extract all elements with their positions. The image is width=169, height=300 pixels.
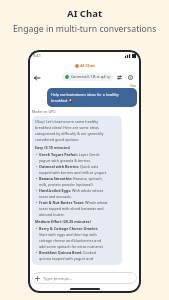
- button[interactable]: Benchmark: [115, 73, 124, 82]
- staticText: 9:41: [33, 53, 41, 58]
- staticText: Model on GPU: [32, 109, 56, 114]
- staticText: •: [36, 226, 38, 231]
- staticText: Engage in multi-turn conversations: [13, 23, 157, 35]
- button[interactable]: Type prompt...: [32, 272, 137, 284]
- staticText: Easy (5-10 minutes): [35, 145, 71, 150]
- staticText: •: [36, 188, 38, 193]
- staticText: AI Chat: [67, 7, 103, 20]
- staticText: AI Chat: [80, 63, 95, 69]
- staticText: Help me brainstorm ideas for a healthy b…: [51, 92, 119, 103]
- staticText: Greek Yogurt Parfait: Layer Greek yogurt…: [39, 152, 100, 163]
- staticText: Breakfast Quinoa Bowl: Cooked quinoa top…: [39, 250, 97, 261]
- button[interactable]: Back: [32, 73, 41, 82]
- staticText: •: [36, 200, 38, 205]
- button[interactable]: Reset session: [126, 73, 135, 82]
- staticText: You: [130, 83, 137, 88]
- staticText: Fruit & Nut Butter Toast: Whole wheat to…: [39, 200, 108, 217]
- button[interactable]: Gemma3-1B-it-q4: [62, 73, 113, 81]
- staticText: Hard-boiled Eggs: With whole wheat toast…: [39, 188, 104, 199]
- staticText: Type prompt...: [43, 275, 73, 281]
- staticText: •: [36, 152, 38, 157]
- staticText: Berry & Cottage Cheese Omelet: Start wit…: [39, 226, 103, 249]
- staticText: •: [36, 164, 38, 169]
- staticText: Okay! Let's brainstorm some healthy brea…: [35, 119, 104, 142]
- staticText: Medium Effort (20-25 minutes): [35, 219, 91, 224]
- staticText: Banana Smoothie: Banana, spinach, milk, …: [39, 176, 103, 187]
- staticText: Oatmeal with Berries: Quick oats topped …: [39, 164, 108, 175]
- staticText: •: [36, 176, 38, 181]
- staticText: •: [36, 250, 38, 255]
- staticText: Gemma3-1B-it-q4: [71, 74, 106, 80]
